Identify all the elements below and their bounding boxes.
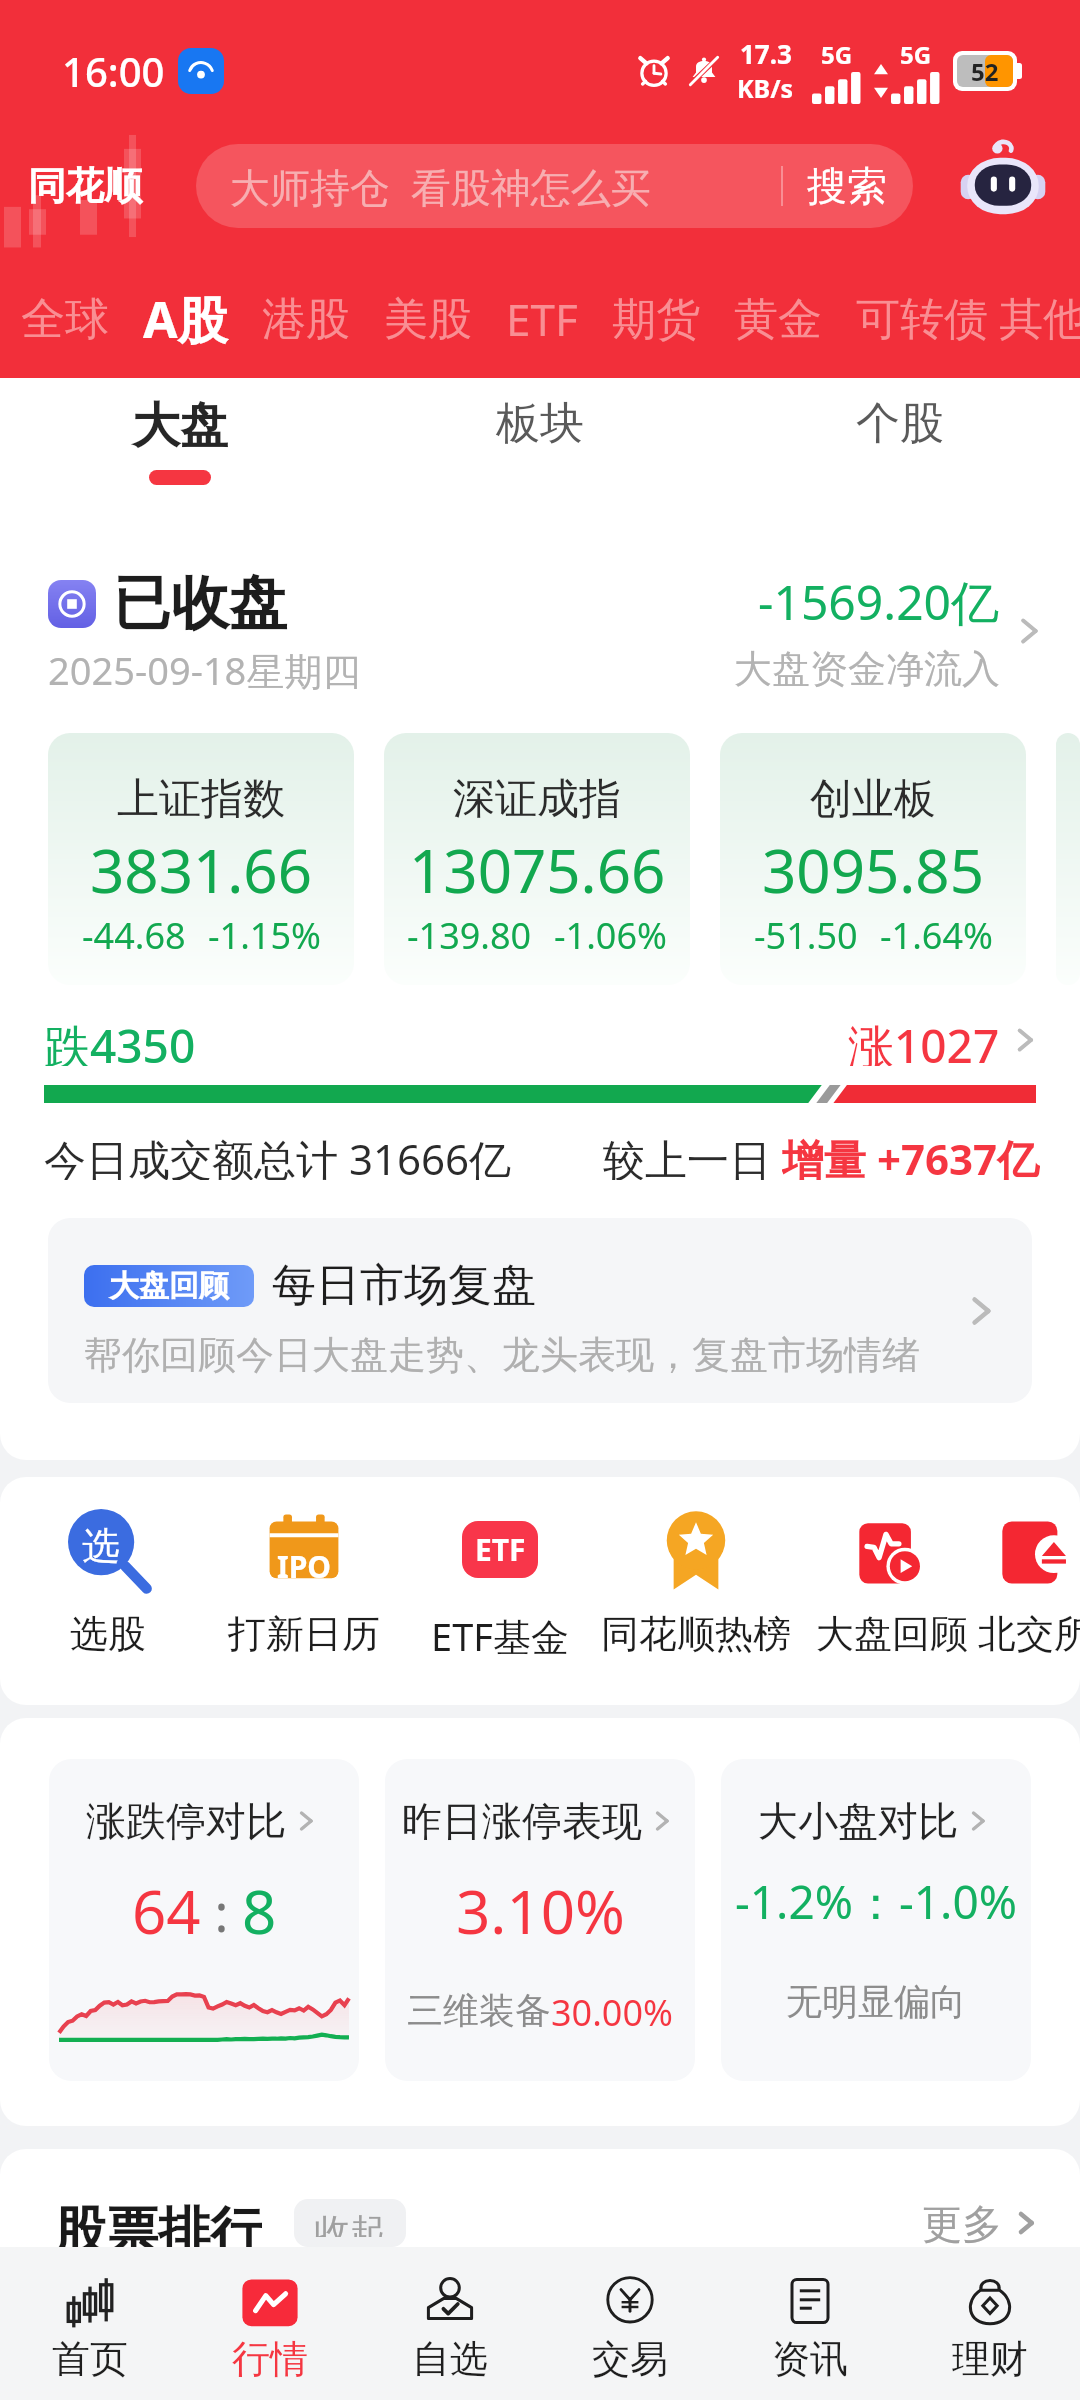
button[interactable]: 同花顺热榜 — [598, 1477, 794, 1705]
button[interactable]: 大盘回顾 — [794, 1477, 990, 1705]
staticText: 每日市场复盘 — [272, 1258, 536, 1313]
staticText: 全球 — [21, 292, 109, 347]
staticText: 13075.66 — [409, 829, 666, 911]
staticText: -1.15% — [208, 911, 321, 960]
button[interactable]: 港股 — [245, 260, 367, 378]
staticText: 大小盘对比 — [758, 1796, 958, 1846]
staticText: 5G — [821, 38, 853, 71]
button[interactable]: 美股 — [367, 260, 489, 378]
staticText: 北交所 — [978, 1610, 1080, 1658]
button[interactable]: 行情 — [180, 2247, 360, 2400]
staticText: 搜索 — [807, 161, 887, 211]
staticText: 较上一日 — [603, 1130, 782, 1180]
button[interactable]: 全球 — [4, 260, 126, 378]
staticText: 港股 — [262, 292, 350, 347]
button[interactable]: 板块 — [360, 378, 720, 513]
staticText: 创业板 — [810, 773, 936, 826]
button[interactable]: 个股 — [720, 378, 1080, 513]
staticText: 8 — [242, 1870, 277, 1952]
staticText: : — [201, 1876, 242, 1947]
staticText: 选 — [82, 1522, 120, 1570]
staticText: 2025-09-18星期四 — [48, 644, 361, 696]
staticText: 同花顺热榜 — [601, 1610, 791, 1658]
button[interactable]: 自选 — [360, 2247, 540, 2400]
button[interactable]: A股 — [126, 260, 245, 378]
staticText: 理财 — [952, 2335, 1028, 2383]
staticText: 收起 — [314, 2209, 386, 2237]
staticText: 其他 — [999, 292, 1080, 347]
staticText: KB/s — [737, 71, 794, 105]
staticText: 16:00 — [62, 44, 165, 98]
staticText: 30.00% — [551, 1988, 673, 2037]
staticText: -44.68 — [82, 911, 186, 960]
staticText: 昨日涨停表现 — [402, 1796, 642, 1846]
staticText: 三维装备 — [407, 1988, 551, 2033]
button[interactable]: 已收盘 — [48, 556, 1050, 706]
staticText: 涨跌停对比 — [86, 1796, 286, 1846]
staticText: 帮你回顾今日大盘走势、龙头表现，复盘市场情绪 — [84, 1331, 920, 1379]
staticText: 资讯 — [772, 2335, 848, 2383]
button[interactable]: 跌4350 — [44, 1014, 1044, 1066]
button[interactable]: IPO — [206, 1477, 402, 1705]
button[interactable]: 收起 — [294, 2199, 406, 2247]
staticText: 上证指数 — [117, 773, 285, 826]
button[interactable]: 交易 — [540, 2247, 720, 2400]
staticText: 个股 — [856, 396, 944, 451]
button[interactable]: 北交所 — [990, 1477, 1080, 1705]
staticText: 17.3 — [740, 36, 792, 71]
button[interactable] — [1056, 733, 1080, 985]
staticText: 大师持仓 看股神怎么买 — [230, 159, 651, 214]
staticText: 跌4350 — [44, 1014, 196, 1066]
button[interactable]: ETF — [489, 260, 595, 378]
staticText: 3831.66 — [90, 829, 312, 911]
staticText: 可转债 — [856, 292, 988, 347]
staticText: 52 — [971, 55, 999, 87]
staticText: 3.10% — [456, 1870, 625, 1952]
staticText: 自选 — [412, 2335, 488, 2383]
staticText: 已收盘 — [113, 567, 287, 640]
staticText: ETF — [475, 1529, 526, 1570]
button[interactable]: AI assistant — [950, 133, 1056, 239]
button[interactable]: 昨日涨停表现 — [385, 1759, 695, 2081]
staticText: 股票排行 — [54, 2199, 262, 2247]
staticText: 大盘回顾 — [109, 1267, 229, 1305]
staticText: 板块 — [496, 396, 584, 451]
button[interactable]: 其他 — [1005, 260, 1080, 378]
staticText: 期货 — [612, 292, 700, 347]
button[interactable]: 首页 — [0, 2247, 180, 2400]
staticText: A股 — [143, 285, 228, 353]
staticText: 大盘回顾 — [816, 1610, 968, 1658]
staticText: -51.50 — [754, 911, 858, 960]
staticText: IPO — [277, 1546, 332, 1587]
staticText: ETF基金 — [431, 1610, 569, 1662]
button[interactable]: 黄金 — [717, 260, 839, 378]
staticText: -1.2%：-1.0% — [735, 1870, 1017, 1933]
button[interactable]: 创业板 — [720, 733, 1026, 985]
button[interactable]: 期货 — [595, 260, 717, 378]
staticText: 无明显偏向 — [786, 1979, 966, 2024]
staticText: 同花顺 — [28, 162, 142, 210]
button[interactable]: 选 — [10, 1477, 206, 1705]
button[interactable]: 大盘回顾 — [48, 1218, 1032, 1403]
button[interactable]: 理财 — [900, 2247, 1080, 2400]
button[interactable]: 大师持仓 看股神怎么买 — [196, 144, 913, 228]
staticText: 深证成指 — [453, 773, 621, 826]
staticText: 大盘资金净流入 — [734, 645, 1000, 693]
staticText: 交易 — [592, 2335, 668, 2383]
button[interactable]: 大盘 — [0, 378, 360, 513]
staticText: -139.80 — [407, 911, 532, 960]
button[interactable]: 可转债 — [839, 260, 1005, 378]
staticText: 首页 — [52, 2335, 128, 2383]
button[interactable]: 深证成指 — [384, 733, 690, 985]
button[interactable]: 上证指数 — [48, 733, 354, 985]
staticText: 涨1027 — [848, 1014, 1000, 1066]
button[interactable]: 大小盘对比 — [721, 1759, 1031, 2081]
staticText: -1569.20亿 — [758, 569, 1000, 635]
staticText: 打新日历 — [228, 1610, 380, 1658]
button[interactable]: 涨跌停对比 — [49, 1759, 359, 2081]
button[interactable]: 资讯 — [720, 2247, 900, 2400]
staticText: 美股 — [384, 292, 472, 347]
staticText: 5G — [900, 38, 932, 71]
button[interactable]: ETF — [402, 1477, 598, 1705]
staticText: 64 — [132, 1870, 201, 1952]
